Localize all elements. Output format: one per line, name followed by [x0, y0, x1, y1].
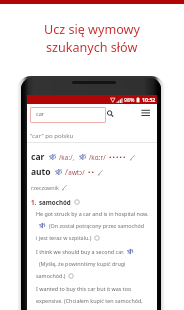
staticText: /kɑːr/ [89, 153, 106, 162]
staticText: 1. [31, 198, 37, 206]
staticText: car [36, 110, 45, 118]
button[interactable]: Play pronunciation [49, 153, 57, 161]
staticText: car [31, 151, 45, 163]
staticText: szukanych słów [46, 39, 138, 56]
staticText: samochód.) [36, 272, 66, 279]
staticText: 10:52 [142, 96, 156, 103]
staticText: /kaː/, [59, 153, 75, 162]
staticText: /ˈawtɔ/ [65, 168, 85, 177]
staticText: I think we should buy a second car. [36, 248, 124, 255]
staticText: i jest teraz w szpitalu.) [36, 234, 92, 241]
staticText: I wanted to buy this car but it was too [36, 285, 132, 292]
button[interactable]: Play pronunciation [79, 153, 87, 161]
staticText: Ucz się wymowy [44, 21, 140, 38]
staticText: expensive. (Chciałem kupić ten samochód, [36, 297, 143, 304]
staticText: rzeczownik [31, 184, 59, 191]
button[interactable]: Search [106, 107, 120, 121]
staticText: He got struck by a car and is in hospita… [36, 210, 149, 217]
button[interactable]: Play pronunciation [39, 222, 46, 229]
staticText: (Myślę, że powinniśmy kupić drugi [39, 260, 126, 267]
button[interactable]: Play pronunciation [127, 248, 134, 255]
staticText: samochód [39, 198, 71, 206]
button[interactable]: Menu [139, 107, 153, 121]
button[interactable]: Play pronunciation [55, 168, 63, 176]
staticText: 98% [124, 96, 135, 103]
staticText: auto [31, 166, 51, 178]
staticText: "car" po polsku [30, 131, 74, 139]
button[interactable]: car [30, 107, 106, 123]
staticText: (On został potrącony przez samochód [49, 222, 145, 229]
